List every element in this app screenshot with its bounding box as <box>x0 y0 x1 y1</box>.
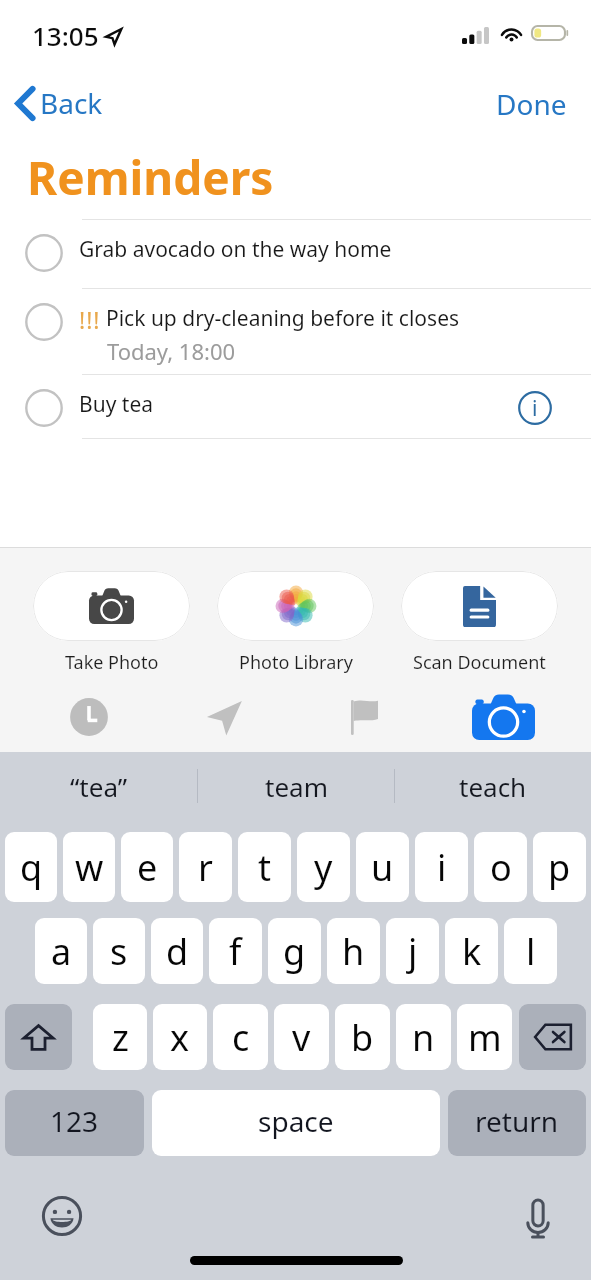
button[interactable]: Back <box>10 80 113 126</box>
button[interactable]: v <box>274 1004 329 1070</box>
staticText: n <box>412 1013 435 1062</box>
staticText: Pick up dry-cleaning before it closes <box>106 304 460 333</box>
button[interactable]: Done <box>482 80 591 128</box>
staticText: Buy tea <box>79 390 154 419</box>
button[interactable]: n <box>396 1004 451 1070</box>
button[interactable]: q <box>5 832 57 902</box>
staticText: i <box>437 843 447 892</box>
button[interactable]: team <box>198 775 394 810</box>
button[interactable]: “tea” <box>0 775 197 810</box>
button[interactable]: More info <box>518 391 552 425</box>
button[interactable]: k <box>445 918 498 984</box>
staticText: !!! <box>79 304 101 335</box>
staticText: Today, 18:00 <box>107 336 236 366</box>
staticText: Grab avocado on the way home <box>79 235 392 264</box>
button[interactable]: j <box>386 918 439 984</box>
staticText: h <box>342 927 365 976</box>
button[interactable]: g <box>268 918 321 984</box>
button[interactable]: u <box>356 832 409 902</box>
button[interactable]: e <box>121 832 173 902</box>
button[interactable]: f <box>209 918 262 984</box>
button[interactable]: Flag <box>346 699 382 735</box>
staticText: r <box>198 843 213 892</box>
staticText: team <box>265 769 328 804</box>
staticText: Photo Library <box>239 650 353 675</box>
button[interactable]: x <box>153 1004 207 1070</box>
staticText: space <box>258 1102 334 1140</box>
staticText: Done <box>496 85 567 123</box>
button[interactable]: Shift <box>5 1004 72 1070</box>
button[interactable]: Remind me <box>68 696 110 738</box>
staticText: o <box>490 843 512 892</box>
staticText: 13:05 <box>32 18 99 53</box>
button[interactable]: y <box>297 832 350 902</box>
staticText: return <box>475 1102 559 1140</box>
button[interactable]: r <box>179 832 232 902</box>
button[interactable]: Location <box>205 698 243 736</box>
staticText: e <box>137 843 158 892</box>
staticText: m <box>468 1013 502 1062</box>
staticText: j <box>408 927 418 976</box>
staticText: z <box>112 1013 129 1062</box>
staticText: g <box>283 927 306 976</box>
button[interactable]: t <box>238 832 291 902</box>
staticText: i <box>532 394 538 423</box>
button[interactable]: Buy tea <box>0 374 591 438</box>
button[interactable]: d <box>151 918 203 984</box>
button[interactable]: Dictation <box>526 1199 550 1238</box>
staticText: Take Photo <box>65 650 159 675</box>
button[interactable]: s <box>93 918 145 984</box>
button[interactable]: p <box>533 832 586 902</box>
button[interactable]: h <box>327 918 380 984</box>
staticText: x <box>170 1013 190 1062</box>
button[interactable]: c <box>213 1004 268 1070</box>
staticText: w <box>75 843 104 892</box>
staticText: c <box>232 1013 250 1062</box>
staticText: a <box>51 927 72 976</box>
button[interactable]: Take Photo <box>33 571 190 675</box>
button[interactable]: 123 <box>5 1090 144 1156</box>
staticText: Scan Document <box>413 650 546 675</box>
staticText: q <box>20 843 43 892</box>
staticText: k <box>462 927 482 976</box>
button[interactable]: l <box>504 918 557 984</box>
staticText: Back <box>40 84 103 122</box>
button[interactable]: z <box>93 1004 147 1070</box>
button[interactable]: b <box>335 1004 390 1070</box>
button[interactable]: space <box>152 1090 440 1156</box>
button[interactable]: teach <box>395 775 591 810</box>
staticText: “tea” <box>70 769 128 804</box>
button[interactable]: Camera <box>471 685 535 749</box>
button[interactable]: Photo Library <box>217 571 374 675</box>
button[interactable]: m <box>457 1004 512 1070</box>
button[interactable]: Scan Document <box>401 571 558 675</box>
staticText: 123 <box>50 1102 99 1140</box>
staticText: y <box>314 843 333 892</box>
button[interactable]: o <box>474 832 527 902</box>
button[interactable]: w <box>63 832 115 902</box>
button[interactable]: a <box>35 918 87 984</box>
staticText: f <box>229 927 242 976</box>
button[interactable]: i <box>415 832 468 902</box>
button[interactable]: return <box>448 1090 586 1156</box>
button[interactable]: !!! <box>0 288 591 374</box>
staticText: d <box>166 927 189 976</box>
button[interactable]: Backspace <box>519 1004 586 1070</box>
staticText: Reminders <box>27 146 274 209</box>
button[interactable]: Emoji keyboard <box>42 1196 82 1236</box>
staticText: p <box>548 843 571 892</box>
staticText: t <box>258 843 271 892</box>
staticText: teach <box>459 769 527 804</box>
staticText: v <box>292 1013 311 1062</box>
staticText: l <box>526 927 536 976</box>
staticText: u <box>371 843 394 892</box>
button[interactable]: Grab avocado on the way home <box>0 219 591 288</box>
staticText: b <box>351 1013 374 1062</box>
staticText: s <box>110 927 128 976</box>
